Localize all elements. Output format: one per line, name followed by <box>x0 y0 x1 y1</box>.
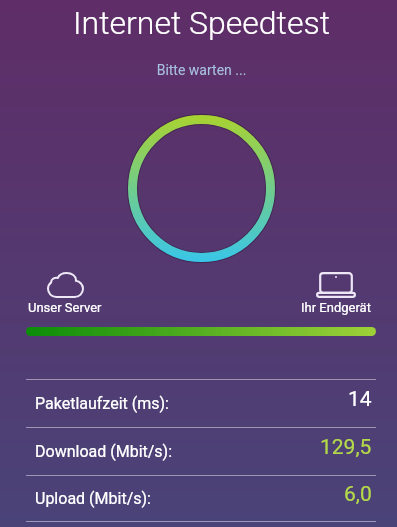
staticText: Download (Mbit/s): <box>35 442 173 461</box>
staticText: Bitte warten ... <box>3 62 397 78</box>
staticText: Unser Server <box>28 300 102 315</box>
staticText: Ihr Endgerät <box>301 300 371 315</box>
staticText: 6,0 <box>344 482 372 507</box>
staticText: Upload (Mbit/s): <box>35 489 151 508</box>
staticText: Paketlaufzeit (ms): <box>35 394 169 413</box>
staticText: 14 <box>348 387 372 412</box>
button[interactable]: Paketlaufzeit (ms): <box>0 380 397 427</box>
button[interactable]: Ihr Endgerät <box>276 272 396 315</box>
button[interactable]: Upload (Mbit/s): <box>0 476 397 521</box>
button[interactable]: Unser Server <box>5 272 125 315</box>
staticText: Internet Speedtest <box>3 4 397 42</box>
staticText: 129,5 <box>320 435 372 460</box>
button[interactable]: Download (Mbit/s): <box>0 428 397 475</box>
